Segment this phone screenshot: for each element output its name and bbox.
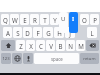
button[interactable]: B — [56, 40, 65, 51]
staticText: J — [69, 29, 71, 37]
button[interactable]: S — [13, 27, 22, 38]
button[interactable]: W — [10, 14, 19, 25]
staticText: W — [12, 16, 18, 24]
staticText: B — [58, 42, 63, 50]
button[interactable]: P — [90, 14, 99, 25]
button[interactable]: Switch keyboard — [12, 53, 22, 64]
button[interactable]: return — [80, 53, 99, 64]
staticText: U — [61, 15, 66, 23]
button[interactable]: 123 — [1, 53, 11, 64]
button[interactable]: R — [30, 14, 39, 25]
button[interactable]: Q — [1, 14, 9, 25]
button[interactable]: D — [23, 27, 32, 38]
button[interactable]: Dictation — [23, 53, 33, 64]
staticText: I — [72, 15, 75, 23]
staticText: D — [25, 29, 30, 37]
staticText: R — [33, 16, 37, 24]
staticText: return — [83, 56, 96, 62]
staticText: Q — [3, 16, 8, 24]
staticText: M — [78, 42, 84, 50]
staticText: E — [23, 16, 27, 24]
staticText: S — [16, 29, 20, 37]
staticText: Z — [19, 42, 23, 50]
staticText: P — [93, 16, 97, 24]
button[interactable]: E — [20, 14, 29, 25]
button[interactable]: J — [65, 27, 75, 38]
button[interactable]: I — [69, 12, 78, 33]
button[interactable]: G — [43, 27, 53, 38]
staticText: F — [36, 29, 40, 37]
button[interactable]: M — [76, 40, 85, 51]
button[interactable]: N — [66, 40, 75, 51]
button[interactable]: U — [59, 12, 68, 33]
button[interactable]: C — [36, 40, 45, 51]
button[interactable]: space — [34, 53, 79, 64]
staticText: L — [90, 29, 94, 37]
staticText: 123 — [2, 56, 10, 62]
staticText: G — [46, 29, 51, 37]
button[interactable]: O — [80, 14, 89, 25]
button[interactable]: Z — [16, 40, 25, 51]
staticText: Y — [53, 16, 57, 24]
staticText: A — [6, 29, 10, 37]
staticText: space — [51, 56, 63, 62]
button[interactable]: Y — [50, 14, 59, 25]
staticText: V — [49, 42, 53, 50]
button[interactable]: H — [54, 27, 64, 38]
staticText: C — [39, 42, 43, 50]
button[interactable]: X — [26, 40, 35, 51]
button[interactable]: A — [3, 27, 12, 38]
button[interactable]: V — [46, 40, 55, 51]
button[interactable]: L — [87, 27, 97, 38]
staticText: T — [43, 16, 47, 24]
button[interactable]: Shift — [1, 40, 15, 51]
staticText: X — [29, 42, 33, 50]
button[interactable]: Backspace — [86, 40, 99, 51]
staticText: O — [82, 16, 87, 24]
button[interactable]: F — [33, 27, 42, 38]
staticText: N — [68, 42, 73, 50]
button[interactable]: T — [40, 14, 49, 25]
staticText: H — [57, 29, 62, 37]
